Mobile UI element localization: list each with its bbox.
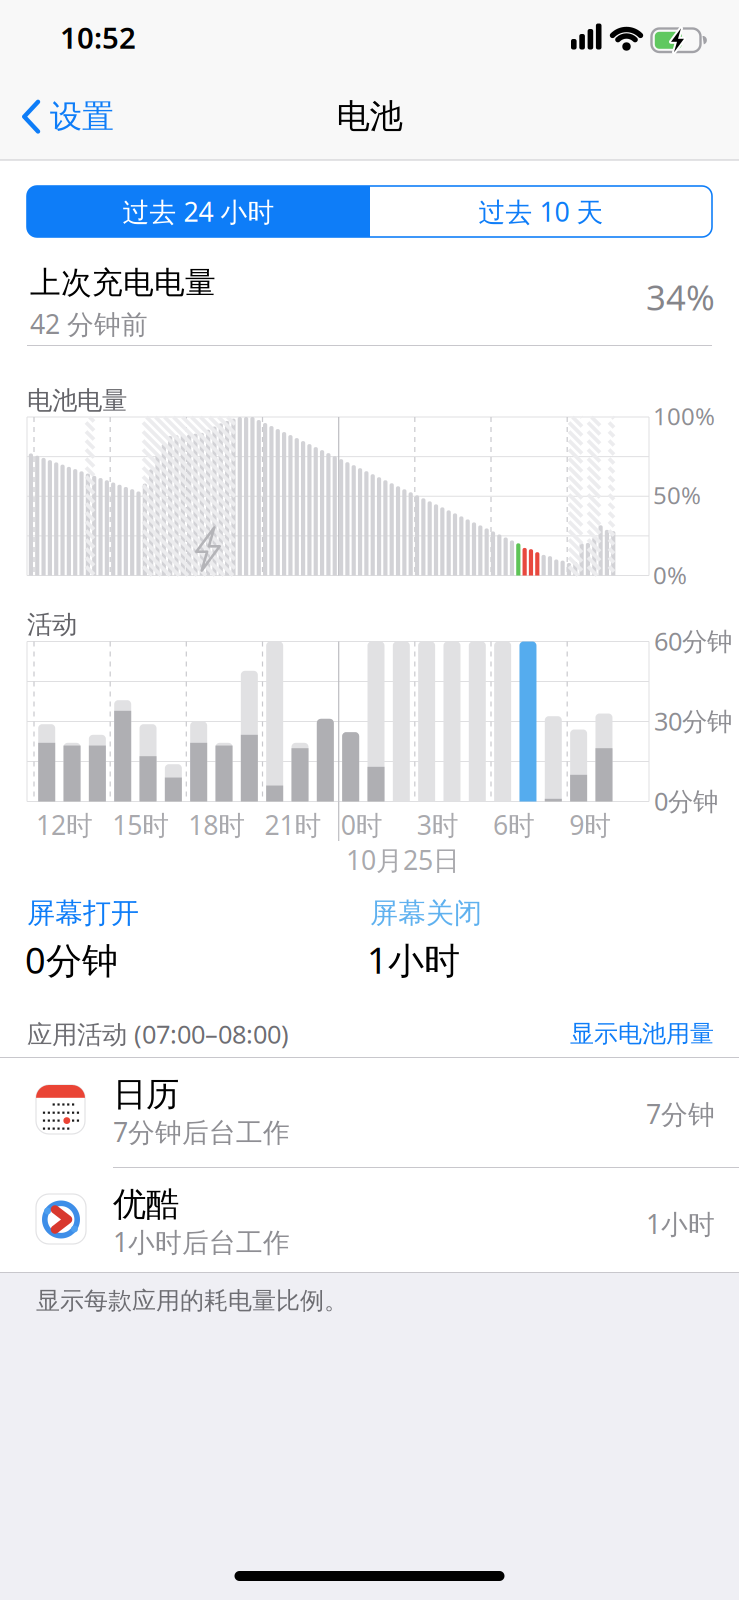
staticText: 应用活动 (07:00–08:00) — [27, 1017, 289, 1051]
staticText: 3时 — [417, 807, 459, 842]
staticText: 6时 — [493, 807, 535, 842]
button[interactable]: 过去 10 天 — [370, 186, 712, 237]
staticText: 0% — [653, 559, 687, 591]
staticText: 10月25日 — [346, 842, 460, 877]
staticText: 1小时后台工作 — [113, 1224, 290, 1259]
staticText: 设置 — [50, 97, 114, 136]
button[interactable]: 过去 24 小时 — [27, 186, 370, 237]
staticText: 1小时 — [367, 936, 460, 984]
staticText: 活动 — [27, 609, 77, 640]
staticText: 1小时 — [646, 1206, 715, 1241]
staticText: 7分钟后台工作 — [113, 1114, 290, 1149]
button[interactable]: 优酷 — [0, 1167, 739, 1272]
staticText: 18时 — [188, 807, 245, 842]
staticText: 日历 — [113, 1074, 179, 1115]
staticText: 7分钟 — [646, 1096, 715, 1131]
staticText: 屏幕打开 — [27, 896, 139, 930]
staticText: 电池 — [336, 96, 402, 137]
staticText: 50% — [653, 479, 701, 511]
staticText: 0分钟 — [25, 936, 118, 984]
staticText: 过去 10 天 — [478, 194, 603, 229]
staticText: 优酷 — [113, 1184, 179, 1225]
staticText: 电池电量 — [27, 385, 127, 416]
staticText: 显示电池用量 — [570, 1019, 714, 1048]
staticText: 21时 — [264, 807, 321, 842]
staticText: 100% — [653, 400, 715, 432]
staticText: 12时 — [36, 807, 93, 842]
staticText: 屏幕关闭 — [370, 896, 482, 930]
staticText: 0时 — [341, 807, 383, 842]
staticText: 10:52 — [60, 18, 136, 57]
staticText: 显示每款应用的耗电量比例。 — [36, 1286, 348, 1315]
staticText: 60分钟 — [654, 624, 732, 658]
staticText: 9时 — [569, 807, 611, 842]
staticText: 42 分钟前 — [30, 306, 148, 341]
staticText: 0分钟 — [654, 784, 718, 818]
button[interactable]: 设置 — [22, 97, 114, 136]
staticText: 上次充电电量 — [30, 264, 216, 302]
staticText: 15时 — [112, 807, 169, 842]
button[interactable]: 日历 — [0, 1057, 739, 1167]
staticText: 30分钟 — [654, 704, 732, 738]
button[interactable]: 显示电池用量 — [414, 1019, 714, 1048]
staticText: 34% — [646, 274, 715, 320]
staticText: 过去 24 小时 — [122, 194, 274, 229]
